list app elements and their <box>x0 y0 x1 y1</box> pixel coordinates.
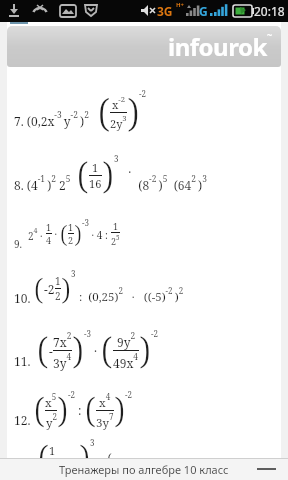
staticText: ) <box>139 326 151 375</box>
staticText: 1 <box>68 221 74 233</box>
staticText: -3 <box>84 328 91 339</box>
staticText: x5 <box>45 391 57 410</box>
staticText: 25 <box>111 233 120 248</box>
staticText: 3 <box>71 268 76 279</box>
staticText: 20:18 <box>254 3 285 19</box>
button[interactable]: infourok <box>7 26 281 67</box>
staticText: ) <box>74 217 82 250</box>
staticText: ( <box>98 86 110 138</box>
button[interactable]: Тренажеры по алгебре 10 класс <box>0 458 288 480</box>
staticText: 3y7 <box>96 411 114 430</box>
staticText: 7. (0,2x-3 y-2 )2 <box>14 109 98 129</box>
staticText: · <box>52 227 60 241</box>
staticText: · <box>119 164 132 180</box>
staticText: 4 <box>46 234 52 246</box>
staticText: : <box>75 402 85 418</box>
staticText: -2 <box>151 328 158 339</box>
staticText: 3 <box>90 437 95 448</box>
staticText: ( <box>37 326 49 375</box>
staticText: ) <box>127 86 139 138</box>
staticText: 9. <box>14 237 28 251</box>
staticText: ( <box>60 217 68 250</box>
staticText: ~ <box>267 28 273 40</box>
staticText: : (0,25)2 · ((-5)-2 )2 <box>76 285 184 304</box>
staticText: 2y3 <box>110 113 127 131</box>
staticText: 49x4 <box>113 351 139 371</box>
staticText: 12. <box>14 412 34 428</box>
staticText: x4 <box>99 391 111 410</box>
staticText: ( <box>38 435 49 480</box>
staticText: Тренажеры по алгебре 10 класс <box>59 462 229 477</box>
staticText: ( <box>101 326 113 375</box>
staticText: ) <box>79 435 90 480</box>
staticText: -2 <box>125 389 132 400</box>
staticText: y2 <box>46 411 57 430</box>
staticText: 3 <box>114 153 119 164</box>
staticText: 1 <box>92 160 99 175</box>
staticText: ( <box>77 151 89 200</box>
staticText: ) <box>114 387 125 433</box>
staticText: 1 <box>55 274 61 288</box>
staticText: -3 <box>82 217 89 228</box>
staticText: 3y4 <box>53 351 72 371</box>
staticText: 2 <box>55 289 61 303</box>
staticText: 11. <box>14 353 37 369</box>
staticText: 2 <box>68 234 74 246</box>
staticText: (8-2 )5 (642 )3 <box>132 173 207 193</box>
staticText: ( <box>85 387 96 433</box>
staticText: -2 <box>139 88 146 99</box>
staticText: 1 <box>46 221 52 233</box>
staticText: ) <box>61 268 71 309</box>
staticText: H+ <box>176 1 185 9</box>
staticText: 9y2 <box>117 330 136 350</box>
staticText: - <box>49 343 53 359</box>
staticText: ) <box>57 387 68 433</box>
staticText: ) <box>102 151 114 200</box>
staticText: -2 <box>68 389 75 400</box>
staticText: 7x2 <box>53 330 72 350</box>
staticText: 1 <box>49 443 79 458</box>
staticText: infourok <box>168 30 267 63</box>
staticText: ( <box>34 387 45 433</box>
staticText: ( <box>34 268 44 309</box>
staticText: ) <box>72 326 84 375</box>
staticText: 1 <box>113 220 119 232</box>
staticText: ( <box>95 450 112 466</box>
staticText: x-2 <box>112 94 126 112</box>
staticText: G <box>199 3 208 19</box>
staticText: 10. <box>14 290 34 306</box>
staticText: · 4 : <box>89 228 111 242</box>
staticText: 3G <box>157 3 173 19</box>
staticText: 8. (4-1 )2 25 <box>14 173 77 193</box>
staticText: -2 <box>44 281 55 297</box>
staticText: 24 · <box>28 226 46 243</box>
staticText: 16 <box>89 176 102 191</box>
staticText: · <box>91 343 101 359</box>
